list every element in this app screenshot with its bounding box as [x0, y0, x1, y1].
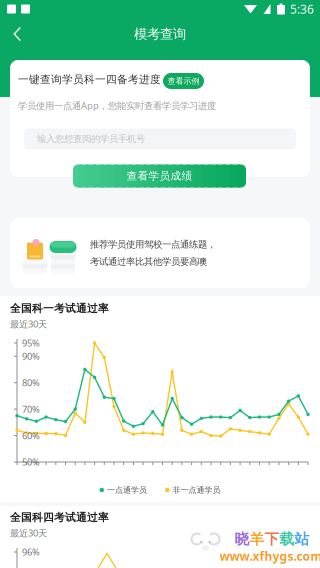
staticText: 全国科四考试通过率 — [10, 511, 109, 524]
staticText: www.xfhygs.com — [219, 548, 320, 564]
staticText: 一点通学员 — [107, 485, 147, 495]
staticText: 全国科一考试通过率 — [10, 302, 109, 315]
staticText: 下 — [264, 530, 279, 548]
staticText: 5:36 — [290, 1, 314, 17]
button[interactable]: Back — [0, 18, 36, 49]
staticText: 95% — [22, 337, 40, 349]
button[interactable]: 查看学员成绩 — [73, 164, 246, 187]
staticText: 学员使用一点通App，您能实时查看学员学习进度 — [18, 99, 216, 112]
button[interactable]: 查看示例 — [163, 73, 204, 89]
staticText: 一键查询学员科一四备考进度 — [18, 73, 161, 86]
staticText: 60% — [22, 429, 40, 442]
staticText: 载 — [279, 530, 294, 548]
staticText: 输入您想查阅的学员手机号 — [37, 133, 145, 145]
staticText: 模考查询 — [134, 26, 186, 42]
staticText: 90% — [22, 350, 40, 362]
staticText: 80% — [22, 376, 40, 389]
staticText: 非一点通学员 — [172, 485, 220, 495]
staticText: 晓 — [234, 530, 249, 548]
staticText: 考试通过率比其他学员要高噢 — [90, 256, 207, 267]
staticText: 查看示例 — [167, 76, 199, 86]
staticText: 站 — [294, 530, 309, 548]
staticText: 50% — [22, 456, 40, 468]
staticText: 70% — [22, 403, 40, 415]
staticText: 96% — [22, 546, 40, 558]
staticText: 最近30天 — [10, 527, 47, 539]
staticText: 查看学员成绩 — [126, 169, 192, 182]
staticText: 最近30天 — [10, 318, 47, 330]
staticText: 推荐学员使用驾校一点通练题， — [90, 238, 216, 250]
staticText: 羊 — [249, 530, 264, 548]
